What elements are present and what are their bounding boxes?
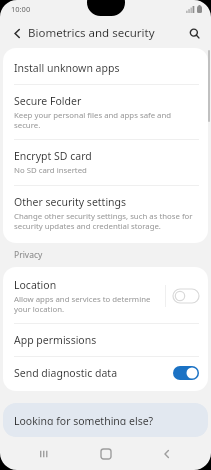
button[interactable]: App permissions — [3, 324, 208, 356]
button[interactable]: Search — [183, 22, 205, 44]
staticText: Install unknown apps — [14, 61, 120, 75]
staticText: 10:00 — [11, 4, 31, 14]
staticText: Send diagnostic data — [14, 366, 118, 380]
button[interactable]: Back — [150, 437, 184, 470]
button[interactable]: Secure Folder — [3, 85, 208, 139]
button[interactable]: Install unknown apps — [3, 52, 208, 84]
staticText: Allow apps and services to determine you… — [14, 294, 160, 314]
staticText: App permissions — [14, 333, 97, 347]
button[interactable]: Send diagnostic data — [3, 357, 208, 389]
staticText: Keep your personal files and apps safe a… — [14, 110, 194, 130]
staticText: Looking for something else? — [14, 414, 154, 425]
staticText: Other security settings — [14, 195, 127, 209]
button[interactable]: Location — [3, 269, 208, 323]
staticText: Location — [14, 278, 57, 292]
button[interactable]: Encrypt SD card — [3, 140, 208, 185]
staticText: Privacy — [14, 249, 43, 261]
staticText: Change other security settings, such as … — [14, 211, 194, 231]
staticText: No SD card inserted — [14, 165, 87, 176]
button[interactable]: Other security settings — [3, 186, 208, 240]
staticText: Biometrics and security — [28, 25, 155, 41]
button[interactable]: Home — [89, 437, 123, 470]
button[interactable]: Back — [6, 22, 28, 44]
button[interactable]: On — [173, 366, 199, 380]
staticText: Encrypt SD card — [14, 149, 92, 163]
staticText: Secure Folder — [14, 94, 82, 108]
button[interactable]: Recent apps — [27, 437, 61, 470]
button[interactable]: Off — [173, 289, 199, 303]
